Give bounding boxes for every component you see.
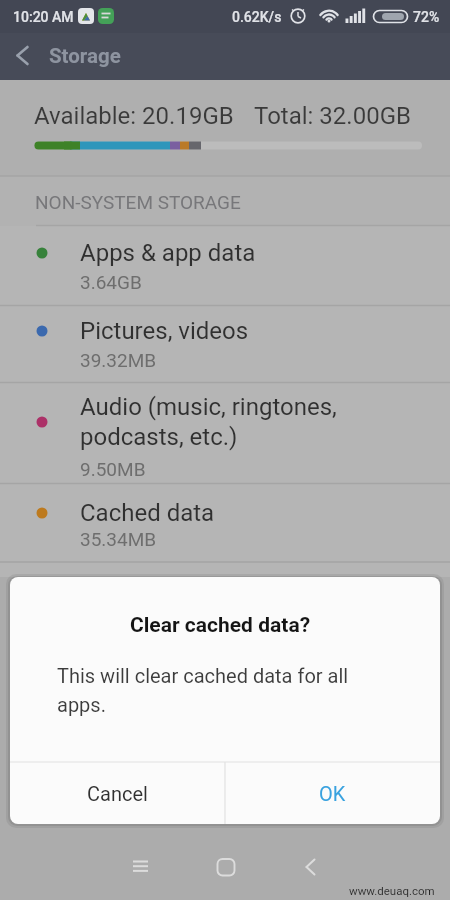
button[interactable]: Cancel <box>10 763 225 824</box>
staticText: 3.64GB <box>80 271 142 293</box>
button[interactable] <box>8 40 40 72</box>
staticText: 72% <box>413 9 440 25</box>
staticText: Clear cached data? <box>130 613 311 638</box>
staticText: Apps & app data <box>80 239 256 267</box>
button[interactable] <box>0 33 450 80</box>
button[interactable] <box>286 844 334 892</box>
staticText: Audio (music, ringtones, <box>80 393 337 421</box>
staticText: Pictures, videos <box>80 317 249 345</box>
staticText: 9.50MB <box>80 458 146 480</box>
button[interactable] <box>0 226 450 306</box>
button[interactable]: OK <box>225 763 440 824</box>
staticText: Total: 32.00GB <box>254 102 411 130</box>
staticText: Available: 20.19GB <box>34 102 234 130</box>
staticText: 39.32MB <box>80 349 157 371</box>
staticText: www.deuaq.com <box>349 884 435 897</box>
staticText: 10:20 AM <box>13 9 74 25</box>
staticText: 35.34MB <box>80 528 157 550</box>
button[interactable] <box>116 844 164 892</box>
button[interactable] <box>202 844 250 892</box>
staticText: apps. <box>57 693 106 716</box>
staticText: Storage <box>49 44 121 68</box>
staticText: 0.62K/s <box>232 9 282 25</box>
staticText: OK <box>319 782 346 805</box>
button[interactable] <box>0 383 450 483</box>
button[interactable] <box>0 484 450 562</box>
staticText: podcasts, etc.) <box>80 423 238 451</box>
staticText: Cached data <box>80 499 215 527</box>
staticText: NON-SYSTEM STORAGE <box>35 191 241 213</box>
staticText: This will clear cached data for all <box>57 664 349 687</box>
button[interactable] <box>0 306 450 383</box>
staticText: Cancel <box>87 782 148 805</box>
